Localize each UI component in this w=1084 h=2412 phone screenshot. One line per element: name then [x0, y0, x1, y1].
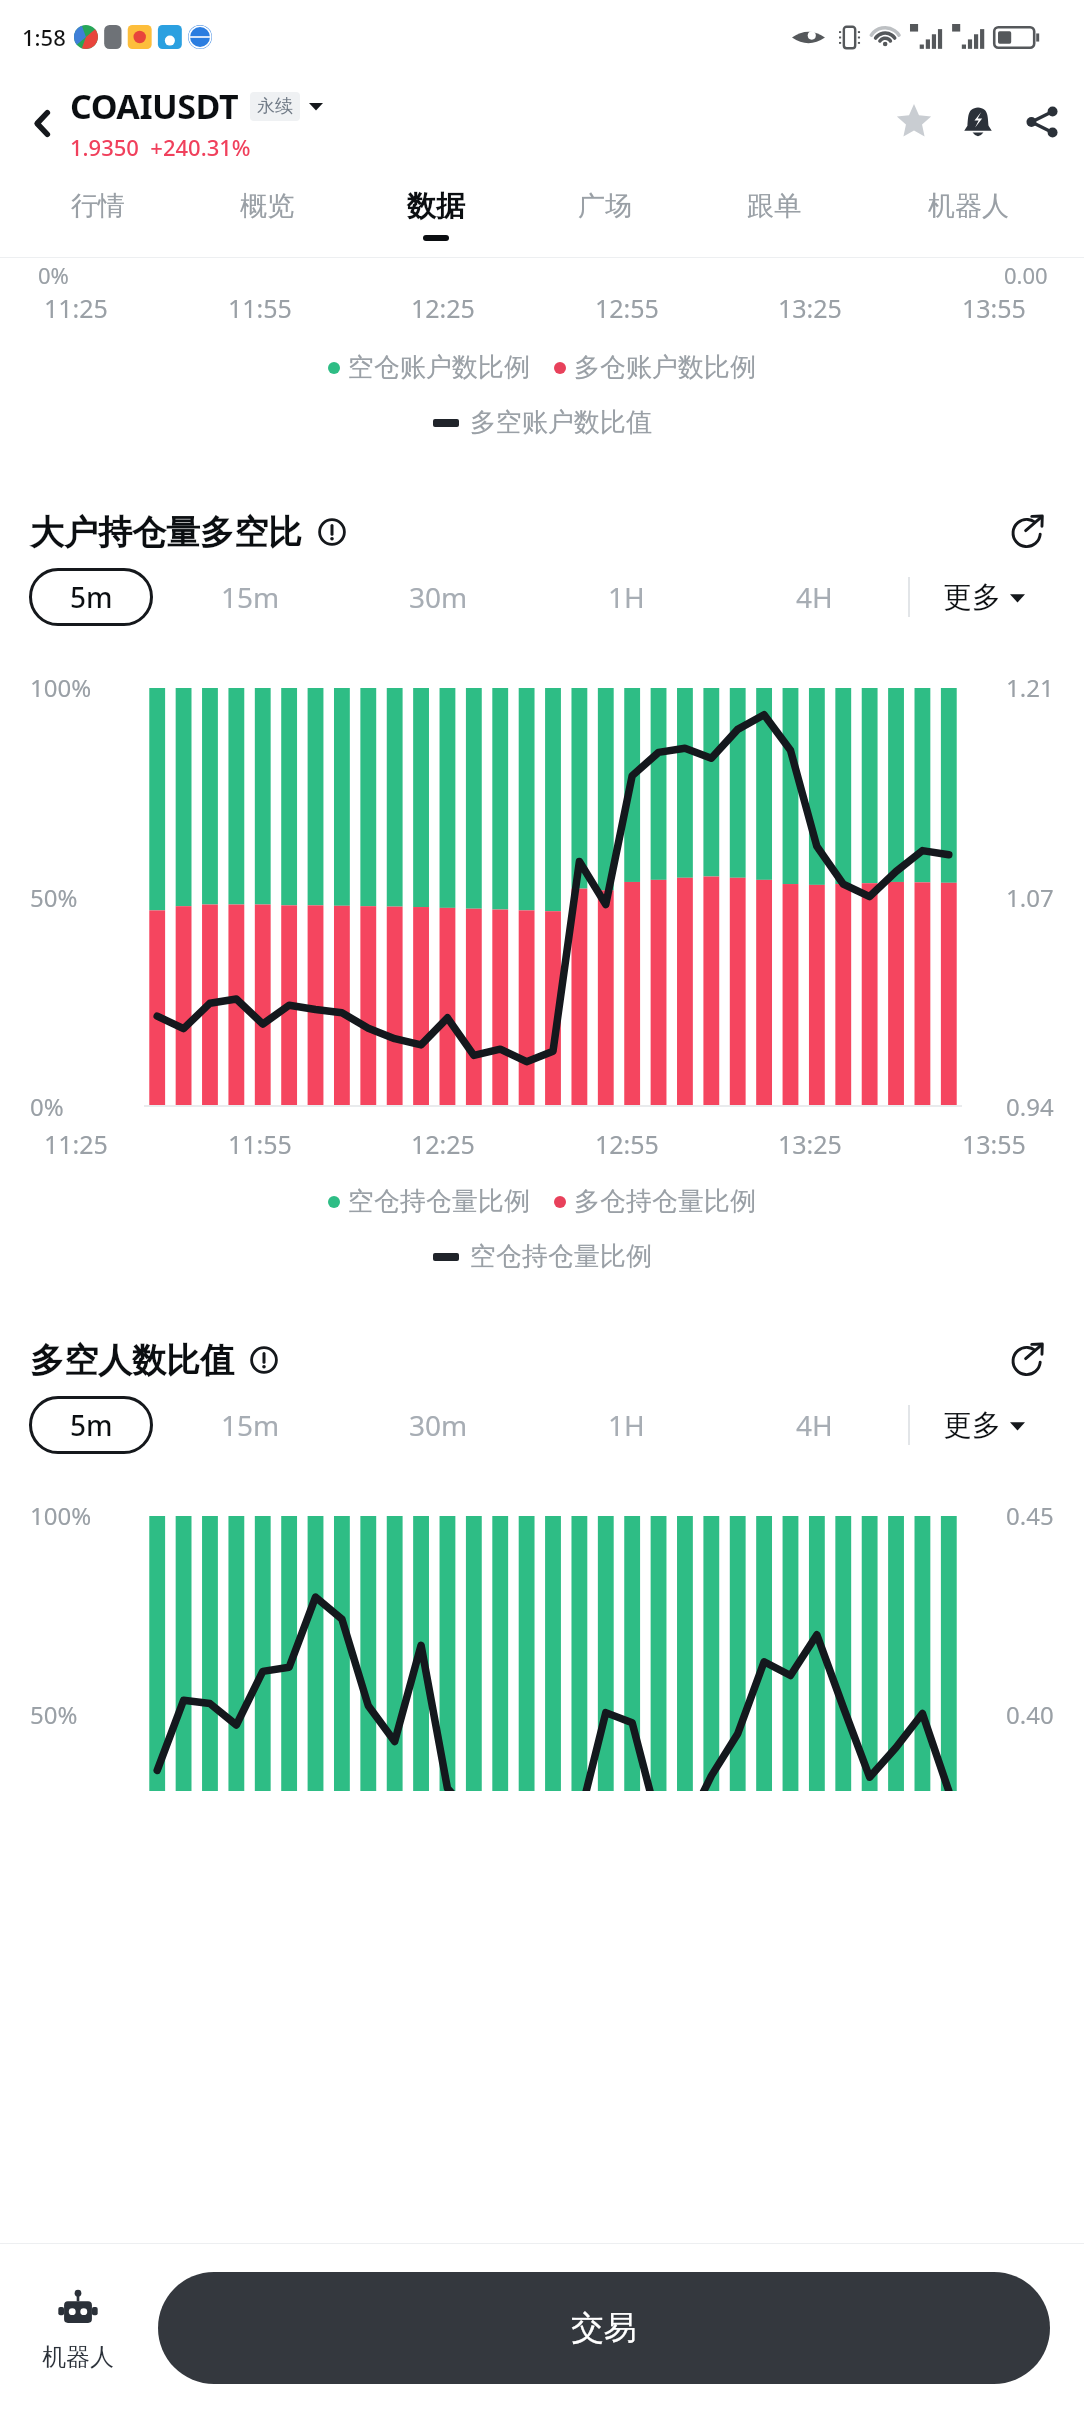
staticText: 15m: [221, 1406, 280, 1444]
staticText: 1.21: [1006, 671, 1054, 704]
staticText: 大户持仓量多空比: [30, 511, 302, 554]
staticText: 多空账户数比值: [470, 406, 652, 439]
button[interactable]: 更多: [910, 561, 1058, 633]
staticText: 13:55: [962, 291, 1026, 325]
staticText: 5m: [70, 578, 113, 616]
staticText: 机器人: [42, 2342, 114, 2372]
staticText: 1H: [608, 578, 645, 616]
staticText: 4H: [796, 578, 833, 616]
staticText: 30m: [409, 1406, 468, 1444]
staticText: 15m: [221, 578, 280, 616]
button[interactable]: 1H: [532, 561, 720, 633]
staticText: 机器人: [928, 189, 1009, 223]
staticText: 广场: [578, 189, 632, 223]
button[interactable]: 15m: [156, 561, 344, 633]
staticText: 12:55: [595, 291, 659, 325]
button[interactable]: 1H: [532, 1389, 720, 1461]
button[interactable]: 交易: [158, 2272, 1050, 2384]
staticText: 更多: [943, 1407, 1001, 1444]
button[interactable]: Info: [247, 1343, 281, 1377]
button[interactable]: 行情: [14, 170, 182, 258]
staticText: 12:25: [411, 1127, 475, 1161]
button[interactable]: 数据: [351, 170, 520, 258]
staticText: 11:25: [44, 291, 108, 325]
staticText: 永续: [257, 95, 293, 118]
staticText: 13:25: [778, 291, 842, 325]
staticText: 0.00: [1004, 260, 1048, 290]
staticText: 行情: [71, 189, 125, 223]
staticText: 数据: [407, 188, 465, 225]
button[interactable]: Price alert: [946, 90, 1010, 154]
button[interactable]: 5m: [26, 1389, 156, 1461]
staticText: 多仓持仓量比例: [574, 1185, 756, 1218]
button[interactable]: Open full screen chart: [1000, 505, 1054, 559]
staticText: 11:55: [228, 1127, 292, 1161]
button[interactable]: 机器人: [858, 170, 1078, 258]
staticText: 1:58: [22, 22, 66, 52]
button[interactable]: 30m: [344, 561, 532, 633]
staticText: 空仓持仓量比例: [348, 1185, 530, 1218]
staticText: 0.94: [1006, 1090, 1054, 1123]
staticText: 更多: [943, 579, 1001, 616]
button[interactable]: 机器人: [4, 2244, 152, 2412]
button[interactable]: Info: [315, 515, 349, 549]
staticText: 0%: [38, 260, 69, 290]
staticText: 0%: [30, 1090, 64, 1123]
staticText: 50%: [30, 881, 78, 914]
staticText: 0.45: [1006, 1499, 1054, 1532]
staticText: 50%: [30, 1698, 78, 1731]
button[interactable]: 概览: [182, 170, 351, 258]
staticText: 13:55: [962, 1127, 1026, 1161]
staticText: 13:25: [778, 1127, 842, 1161]
button[interactable]: 4H: [720, 1389, 908, 1461]
button[interactable]: Favorite: [882, 90, 946, 154]
button[interactable]: 广场: [520, 170, 689, 258]
button[interactable]: 4H: [720, 561, 908, 633]
staticText: 概览: [240, 189, 294, 223]
button[interactable]: 30m: [344, 1389, 532, 1461]
staticText: 多空人数比值: [30, 1339, 234, 1382]
button[interactable]: 15m: [156, 1389, 344, 1461]
staticText: COAIUSDT: [70, 83, 239, 129]
button[interactable]: Share: [1010, 90, 1074, 154]
staticText: 100%: [30, 671, 92, 704]
staticText: 12:25: [411, 291, 475, 325]
staticText: 4H: [796, 1406, 833, 1444]
staticText: 交易: [571, 2307, 637, 2349]
staticText: 5m: [70, 1406, 113, 1444]
staticText: 12:55: [595, 1127, 659, 1161]
button[interactable]: 跟单: [689, 170, 858, 258]
staticText: 多仓账户数比例: [574, 351, 756, 384]
staticText: 1.9350 +240.31%: [70, 132, 251, 162]
staticText: 空仓账户数比例: [348, 351, 530, 384]
staticText: 30m: [409, 578, 468, 616]
staticText: 0.40: [1006, 1698, 1054, 1731]
staticText: 11:25: [44, 1127, 108, 1161]
button[interactable]: 更多: [910, 1389, 1058, 1461]
staticText: 100%: [30, 1499, 92, 1532]
staticText: 空仓持仓量比例: [470, 1240, 652, 1273]
button[interactable]: Back: [14, 95, 70, 151]
button[interactable]: Open full screen chart: [1000, 1333, 1054, 1387]
staticText: 1.07: [1006, 881, 1054, 914]
button[interactable]: 5m: [26, 561, 156, 633]
staticText: 跟单: [747, 189, 801, 223]
staticText: 1H: [608, 1406, 645, 1444]
staticText: 11:55: [228, 291, 292, 325]
